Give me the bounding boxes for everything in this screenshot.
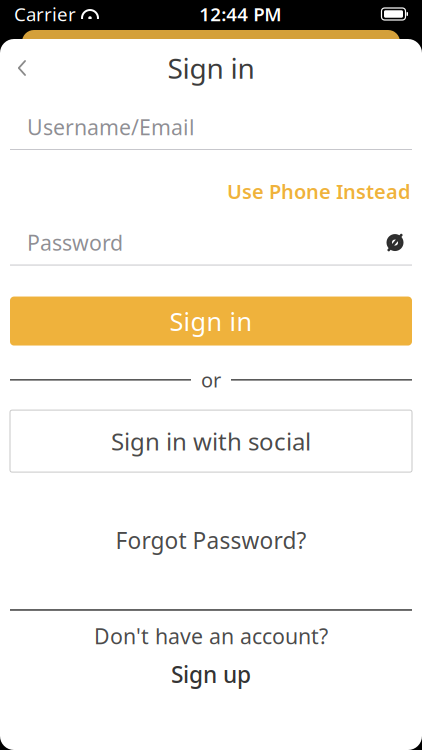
button[interactable]: Show password: [375, 226, 415, 260]
staticText: or: [201, 367, 221, 393]
staticText: Forgot Password?: [115, 525, 306, 555]
staticText: Password: [27, 228, 123, 257]
staticText: 12:44 PM: [199, 2, 281, 26]
button[interactable]: Use Phone Instead: [216, 170, 422, 213]
button[interactable]: Sign up: [153, 653, 269, 695]
staticText: Sign in: [167, 49, 254, 87]
button[interactable]: Forgot Password?: [99, 515, 322, 565]
button[interactable]: Sign in with social: [10, 410, 412, 472]
staticText: Sign in with social: [111, 425, 311, 457]
button[interactable]: Sign in: [10, 297, 412, 346]
staticText: Username/Email: [27, 113, 195, 141]
staticText: Carrier: [14, 2, 76, 26]
staticText: Sign in: [169, 304, 252, 338]
staticText: Don't have an account?: [94, 622, 328, 650]
button[interactable]: Back: [0, 48, 44, 88]
staticText: Use Phone Instead: [227, 178, 411, 205]
staticText: Sign up: [171, 659, 251, 689]
